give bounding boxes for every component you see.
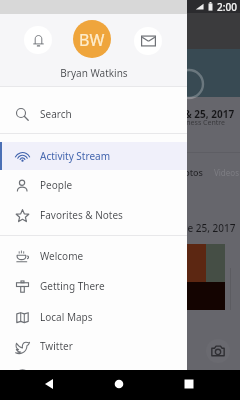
button[interactable]: Back — [36, 371, 62, 397]
button[interactable]: Recent apps — [176, 371, 202, 397]
staticText: People — [40, 178, 73, 192]
staticText: Olympia Business Centre — [143, 118, 226, 128]
staticText: JUNE 23 & 25, 2017 — [143, 107, 235, 121]
button[interactable]: Add photo — [206, 339, 230, 363]
button[interactable]: Favorites & Notes — [0, 201, 187, 229]
staticText: Bryan Watkins — [60, 66, 128, 80]
button[interactable]: Messages — [134, 27, 162, 55]
staticText: BW — [79, 29, 105, 51]
staticText: Videos — [214, 167, 239, 178]
staticText: Facebook — [40, 369, 85, 383]
button[interactable]: BW — [73, 20, 111, 58]
staticText: Local Maps — [40, 310, 93, 324]
staticText: Favorites & Notes — [40, 208, 123, 222]
button[interactable]: People — [0, 171, 187, 199]
staticText: Twitter — [40, 339, 73, 353]
button[interactable]: Notifications — [24, 26, 52, 54]
staticText: Search — [40, 107, 72, 121]
button[interactable]: Search — [0, 100, 187, 128]
button[interactable]: Local Maps — [0, 303, 187, 331]
staticText: June 25, 2017 — [172, 221, 236, 235]
button[interactable]: Facebook — [0, 362, 187, 390]
staticText: Activity Stream — [40, 149, 110, 163]
staticText: Getting There — [40, 279, 105, 293]
button[interactable]: Twitter — [0, 332, 187, 360]
button[interactable]: Getting There — [0, 272, 187, 300]
button[interactable]: Welcome — [0, 242, 187, 270]
staticText: Welcome — [40, 249, 84, 263]
button[interactable]: Activity Stream — [0, 142, 187, 170]
staticText: 2:00 — [217, 0, 237, 13]
staticText: Photos — [173, 166, 203, 178]
button[interactable]: Home — [106, 371, 132, 397]
